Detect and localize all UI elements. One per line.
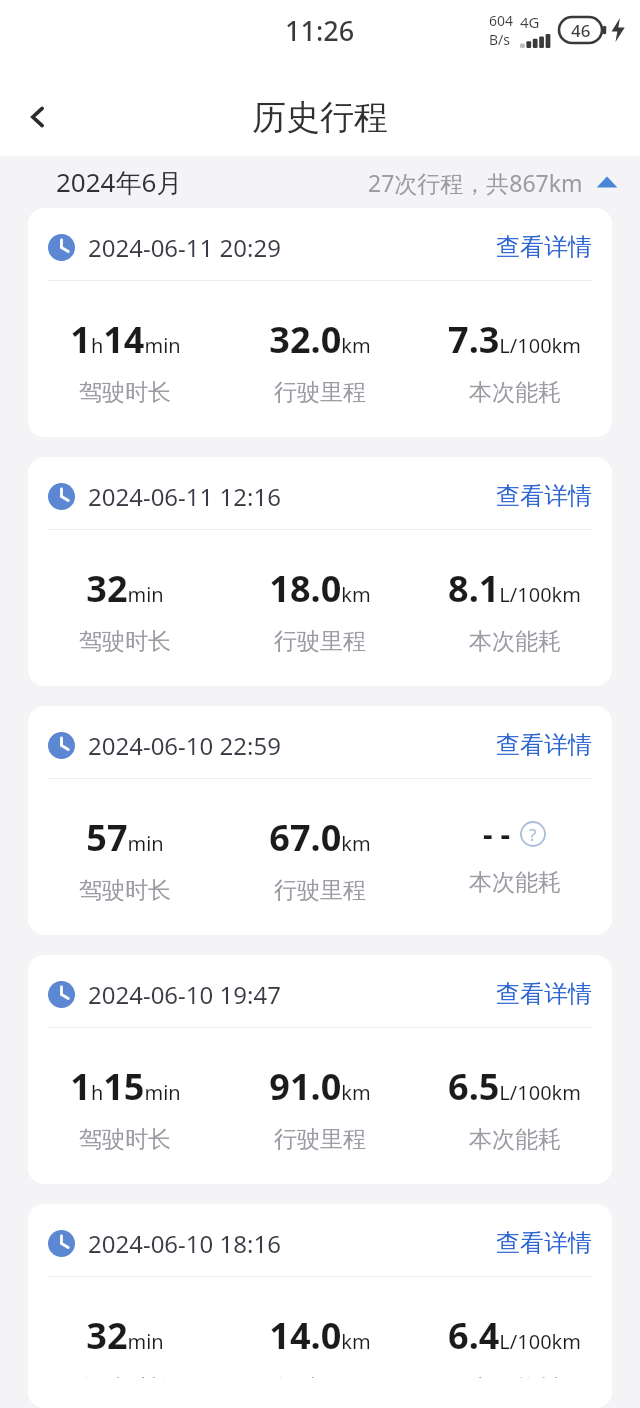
- staticText: 18.0km: [269, 564, 371, 613]
- button[interactable]: 2024-06-10 22:59: [28, 706, 612, 935]
- button[interactable]: 2024-06-10 19:47: [28, 955, 612, 1184]
- button[interactable]: 查看详情: [494, 1226, 594, 1260]
- staticText: ?: [529, 823, 537, 846]
- button[interactable]: 帮助: [520, 821, 546, 847]
- button[interactable]: 查看详情: [494, 230, 594, 264]
- staticText: 4G: [520, 12, 540, 32]
- staticText: 32min: [86, 1311, 164, 1360]
- staticText: 查看详情: [496, 481, 592, 511]
- staticText: 查看详情: [496, 1228, 592, 1258]
- staticText: 27次行程，共867km: [368, 167, 583, 198]
- button[interactable]: Back: [10, 89, 66, 145]
- staticText: 2024-06-10 18:16: [88, 1227, 281, 1260]
- staticText: 1h14min: [70, 315, 181, 364]
- button[interactable]: 2024-06-11 12:16: [28, 457, 612, 686]
- staticText: 57min: [86, 813, 164, 862]
- staticText: 本次能耗: [469, 627, 561, 656]
- staticText: 驾驶时长: [79, 876, 171, 905]
- staticText: 查看详情: [496, 232, 592, 262]
- staticText: 32min: [86, 564, 164, 613]
- button[interactable]: 2024年6月: [0, 156, 640, 208]
- button[interactable]: 查看详情: [494, 728, 594, 762]
- staticText: 本次能耗: [469, 1125, 561, 1154]
- staticText: 8.1L/100km: [448, 564, 581, 613]
- staticText: 604: [489, 11, 514, 30]
- staticText: 行驶里程: [274, 1125, 366, 1154]
- staticText: 2024-06-11 12:16: [88, 480, 281, 513]
- staticText: 驾驶时长: [79, 1374, 171, 1378]
- staticText: 2024-06-11 20:29: [88, 231, 281, 264]
- staticText: 67.0km: [269, 813, 371, 862]
- staticText: 驾驶时长: [79, 378, 171, 407]
- staticText: 7.3L/100km: [448, 315, 581, 364]
- staticText: 2024-06-10 19:47: [88, 978, 281, 1011]
- staticText: 查看详情: [496, 730, 592, 760]
- button[interactable]: 2024-06-10 18:16: [28, 1204, 612, 1408]
- staticText: 46: [571, 19, 591, 42]
- staticText: 本次能耗: [469, 378, 561, 407]
- staticText: 行驶里程: [274, 627, 366, 656]
- button[interactable]: 查看详情: [494, 479, 594, 513]
- staticText: 行驶里程: [274, 378, 366, 407]
- staticText: 11:26: [285, 12, 355, 49]
- staticText: 驾驶时长: [79, 627, 171, 656]
- staticText: 本次能耗: [469, 1374, 561, 1378]
- staticText: - -: [483, 813, 510, 854]
- staticText: 32.0km: [269, 315, 371, 364]
- staticText: 历史行程: [252, 96, 388, 139]
- staticText: 2024-06-10 22:59: [88, 729, 281, 762]
- staticText: 驾驶时长: [79, 1125, 171, 1154]
- staticText: B/s: [489, 30, 511, 49]
- staticText: 6.5L/100km: [448, 1062, 581, 1111]
- staticText: 14.0km: [269, 1311, 371, 1360]
- staticText: 查看详情: [496, 979, 592, 1009]
- staticText: 2024年6月: [56, 164, 183, 200]
- button[interactable]: 2024-06-11 20:29: [28, 208, 612, 437]
- staticText: 行驶里程: [274, 876, 366, 905]
- button[interactable]: 查看详情: [494, 977, 594, 1011]
- staticText: 1h15min: [70, 1062, 181, 1111]
- staticText: 91.0km: [269, 1062, 371, 1111]
- staticText: 本次能耗: [469, 868, 561, 897]
- staticText: 行驶里程: [274, 1374, 366, 1378]
- staticText: 6.4L/100km: [448, 1311, 581, 1360]
